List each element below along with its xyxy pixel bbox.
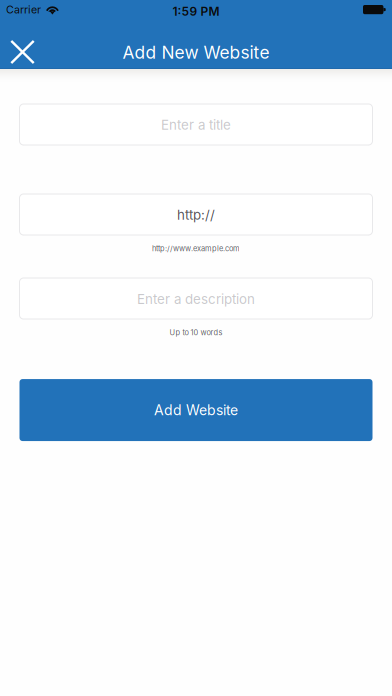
button[interactable]: http:// bbox=[19, 194, 372, 235]
staticText: Enter a description bbox=[137, 291, 255, 307]
staticText: Add Website bbox=[154, 402, 238, 418]
staticText: http:// bbox=[177, 207, 215, 223]
button[interactable]: Enter a description bbox=[19, 278, 372, 319]
staticText: Carrier bbox=[6, 3, 41, 16]
staticText: Add New Website bbox=[122, 42, 269, 63]
staticText: Up to 10 words bbox=[169, 328, 222, 337]
staticText: 1:59 PM bbox=[172, 4, 219, 18]
button[interactable]: Enter a title bbox=[19, 104, 372, 145]
button[interactable]: Add Website bbox=[19, 379, 372, 441]
button[interactable]: Close bbox=[0, 18, 45, 74]
staticText: Enter a title bbox=[161, 117, 231, 133]
staticText: http://www.example.com bbox=[152, 244, 240, 253]
